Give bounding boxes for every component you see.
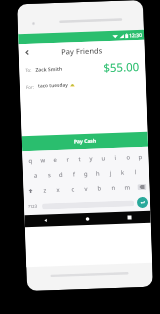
staticText: i [114, 154, 117, 162]
button[interactable]: Pay Cash [22, 132, 148, 151]
button[interactable]: w [38, 155, 47, 165]
button[interactable]: z [40, 185, 49, 195]
button[interactable]: ?123 [26, 203, 39, 211]
staticText: t [78, 155, 82, 163]
button[interactable]: q [26, 156, 35, 165]
staticText: For: [26, 84, 35, 90]
staticText: x [56, 186, 61, 194]
button[interactable]: To: [19, 59, 145, 77]
button[interactable]: h [94, 168, 102, 178]
staticText: d [59, 171, 63, 179]
staticText: taco tuesday [38, 82, 68, 90]
button[interactable]: b [95, 183, 104, 193]
staticText: c [71, 185, 75, 193]
staticText: y [89, 155, 94, 163]
button[interactable]: k [119, 168, 127, 177]
button[interactable]: u [99, 153, 108, 162]
staticText: w [40, 156, 46, 165]
staticText: z [43, 186, 47, 194]
staticText: k [121, 169, 125, 177]
staticText: p [138, 153, 143, 161]
staticText: r [66, 156, 70, 164]
button[interactable]: c [68, 184, 77, 194]
button[interactable]: Space [42, 200, 134, 209]
button[interactable]: Back [20, 46, 34, 59]
button[interactable]: g [82, 169, 90, 178]
button[interactable]: a [32, 171, 40, 180]
button[interactable]: For: [20, 77, 146, 92]
button[interactable]: Recent apps [108, 211, 151, 224]
button[interactable]: i [111, 153, 120, 162]
staticText: Pay Cash [74, 138, 97, 145]
button[interactable]: o [124, 152, 133, 162]
button[interactable]: t [75, 154, 84, 163]
staticText: o [126, 153, 131, 161]
staticText: n [111, 184, 116, 192]
button[interactable]: l [132, 167, 140, 176]
staticText: $55.00 [103, 59, 139, 74]
staticText: ?123 [28, 204, 38, 210]
button[interactable]: n [109, 183, 118, 192]
staticText: e [53, 156, 58, 164]
staticText: m [124, 183, 131, 192]
staticText: s [48, 171, 51, 179]
staticText: To: [25, 67, 32, 73]
staticText: Pay Friends [60, 45, 103, 57]
staticText: q [28, 157, 33, 165]
staticText: g [84, 170, 88, 178]
staticText: b [97, 184, 102, 193]
button[interactable]: r [63, 154, 72, 164]
button[interactable]: Shift [25, 186, 35, 195]
staticText: j [110, 169, 112, 177]
button[interactable]: Home [66, 212, 109, 226]
staticText: a [34, 172, 38, 180]
staticText: 12:30 [129, 32, 142, 39]
staticText: h [96, 169, 100, 178]
button[interactable]: Backspace [137, 184, 147, 190]
staticText: Zack Smith [35, 66, 62, 74]
button[interactable]: j [107, 168, 115, 177]
staticText: v [84, 185, 89, 193]
button[interactable]: Enter [137, 197, 148, 208]
button[interactable]: p [136, 152, 145, 161]
button[interactable]: s [45, 170, 53, 179]
staticText: u [101, 154, 106, 162]
button[interactable]: f [70, 169, 78, 179]
button[interactable]: v [82, 184, 91, 193]
staticText: l [135, 168, 137, 176]
button[interactable]: e [51, 155, 60, 164]
button[interactable]: x [54, 185, 63, 194]
button[interactable]: d [57, 170, 65, 179]
button[interactable]: Back [24, 214, 67, 227]
button[interactable]: y [87, 154, 96, 163]
button[interactable]: m [123, 182, 132, 192]
staticText: f [73, 170, 76, 178]
